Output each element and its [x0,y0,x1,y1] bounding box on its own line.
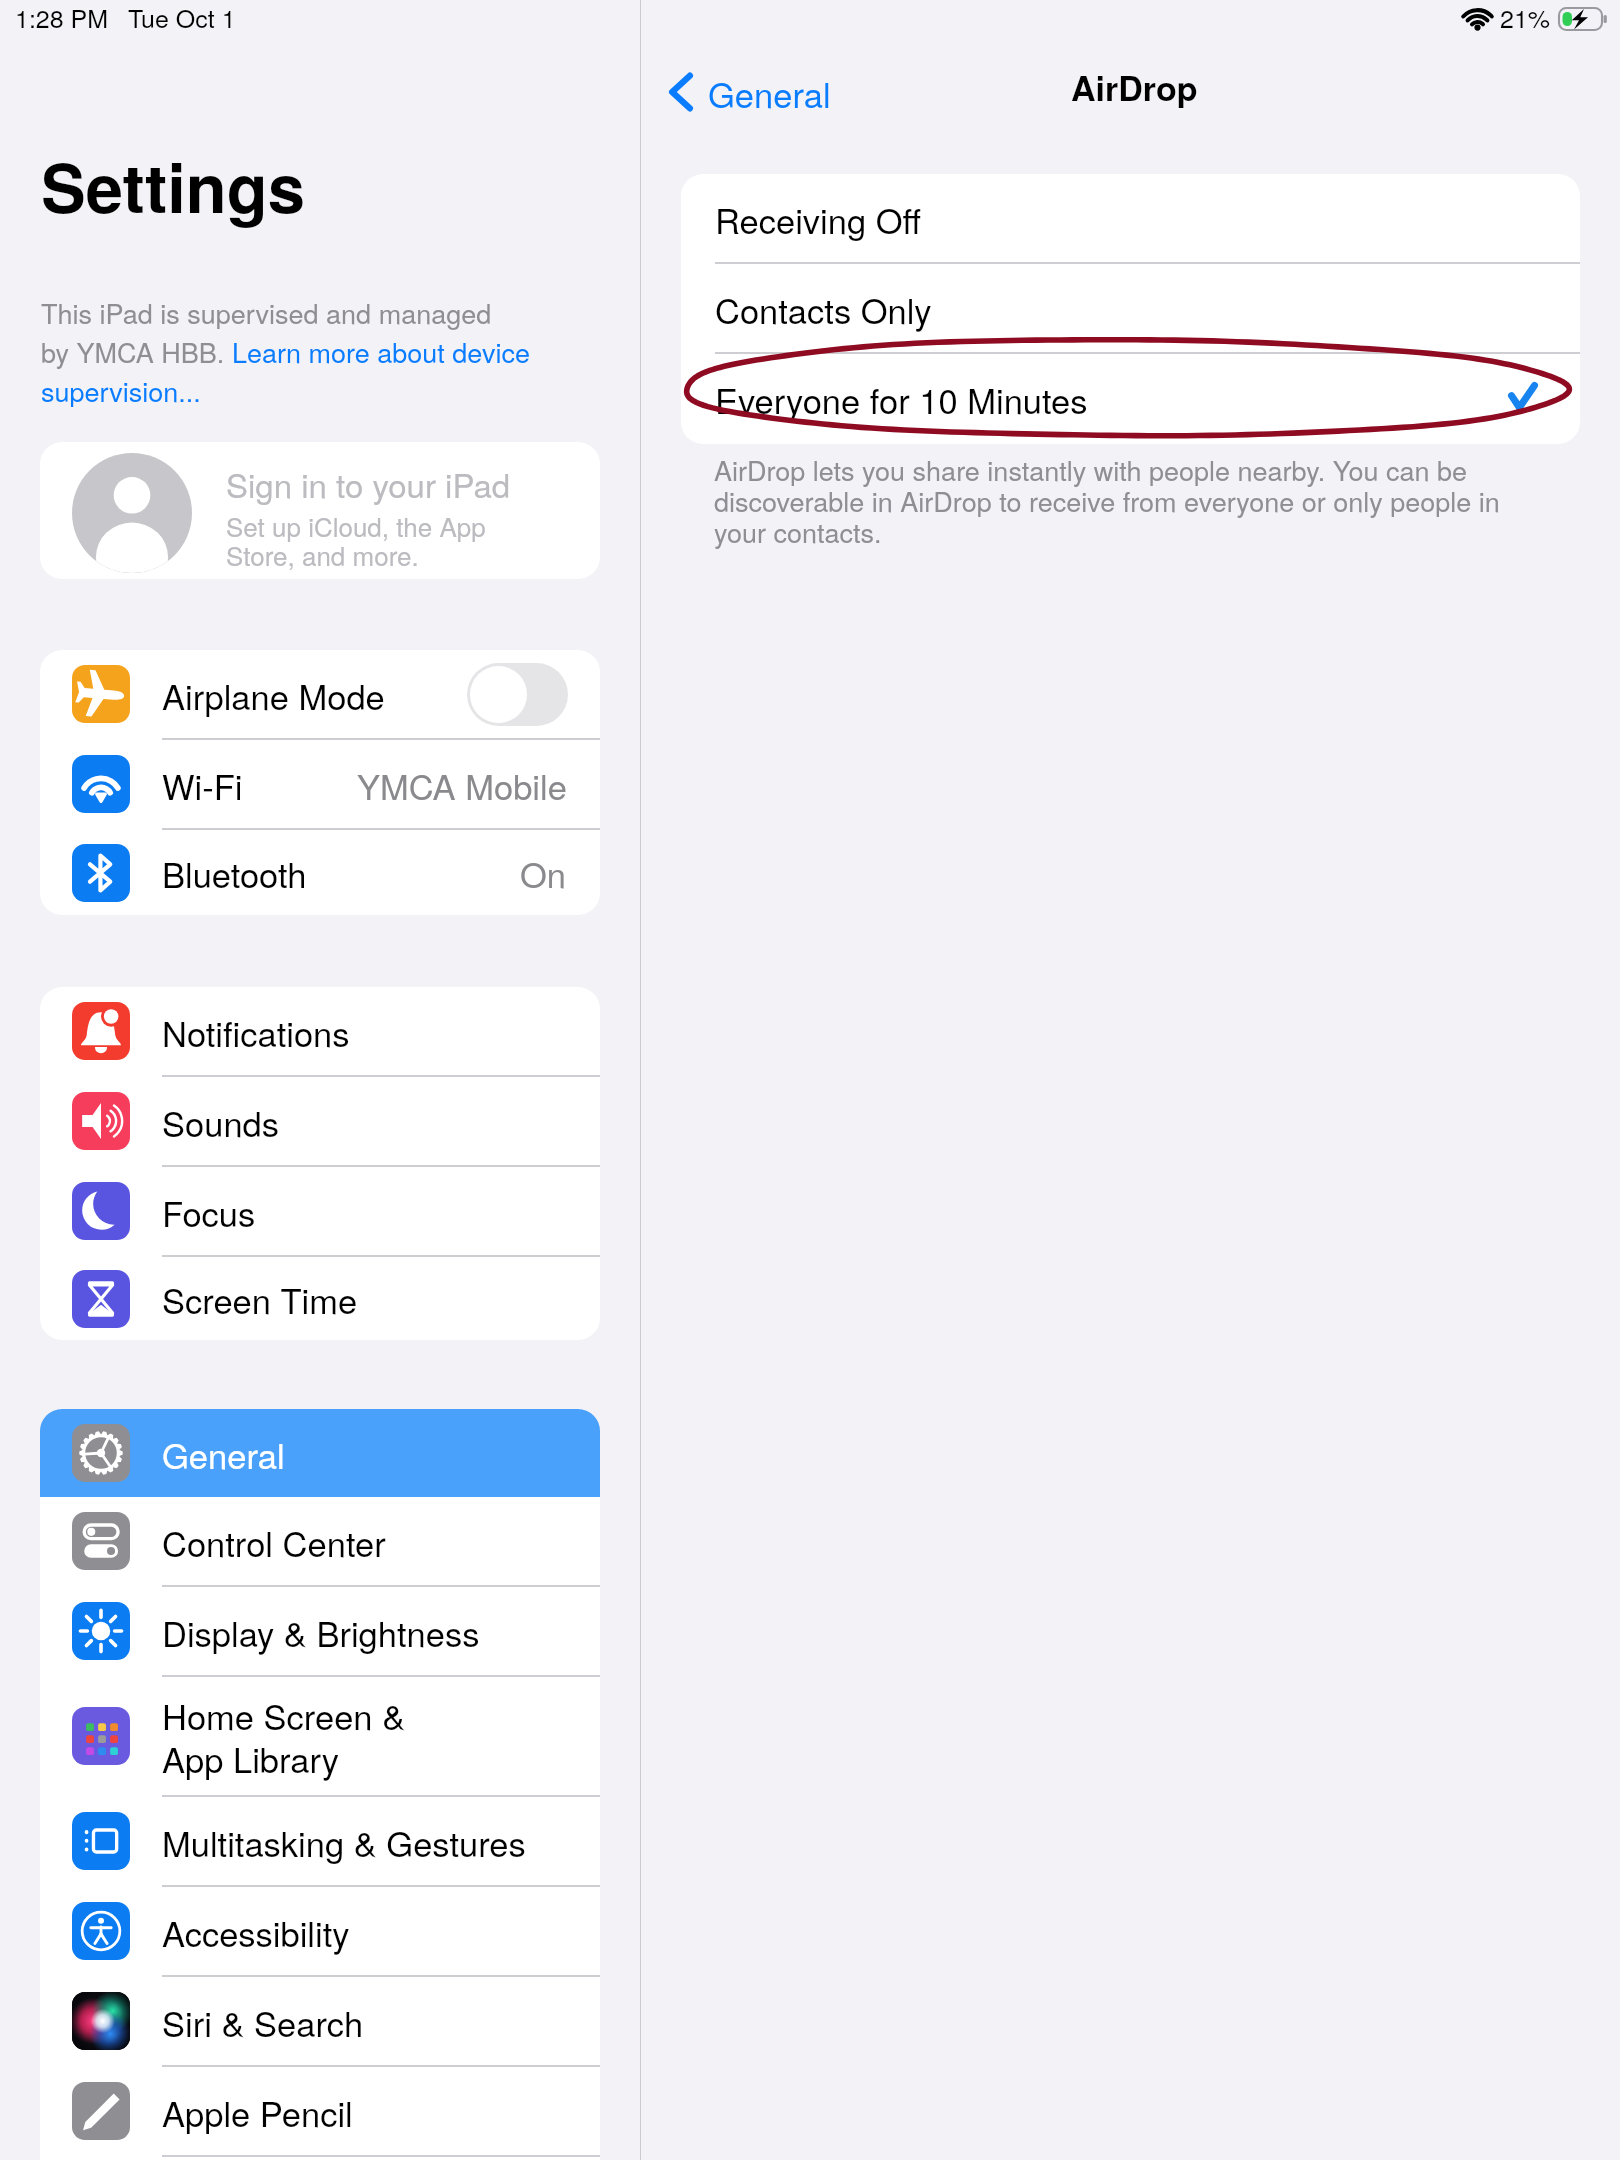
button[interactable]: Control Center [40,1497,600,1585]
button[interactable]: Airplane Mode toggle [467,663,568,726]
button[interactable]: Airplane Mode [40,650,600,738]
staticText: Tue Oct 1 [128,0,236,35]
staticText: Set up iCloud, the App Store, and more. [226,507,486,574]
staticText: Screen Time [162,1274,358,1323]
staticText: Sign in to your iPad [226,460,511,507]
button[interactable]: Focus [40,1167,600,1255]
button[interactable]: General [668,64,831,120]
staticText: by YMCA HBB. [41,332,232,371]
button[interactable]: Sign in to your iPad [40,442,600,579]
button[interactable]: Apple Pencil [40,2067,600,2155]
staticText: Wi-Fi [162,760,243,809]
staticText: 21% [1500,0,1551,35]
staticText: Apple Pencil [162,2087,353,2136]
button[interactable]: Receiving Off [681,174,1580,262]
staticText: AirDrop lets you share instantly with pe… [714,450,1514,551]
button[interactable]: Siri & Search [40,1977,600,2065]
button[interactable]: Contacts Only [681,264,1580,352]
button[interactable]: Home Screen & App Library [40,1677,600,1795]
button[interactable]: Display & Brightness [40,1587,600,1675]
button[interactable]: Sounds [40,1077,600,1165]
button[interactable]: Accessibility [40,1887,600,1975]
staticText: Bluetooth [162,848,307,897]
staticText: Siri & Search [162,1997,364,2046]
button[interactable]: General [40,1409,600,1497]
staticText: Home Screen & App Library [162,1690,406,1783]
button[interactable]: Wi-Fi [40,740,600,828]
button[interactable]: Screen Time [40,1257,600,1340]
staticText: Accessibility [162,1907,350,1956]
button[interactable]: supervision... [41,371,201,410]
staticText: Multitasking & Gestures [162,1817,526,1866]
button[interactable]: Multitasking & Gestures [40,1797,600,1885]
staticText: On [520,848,567,897]
staticText: Receiving Off [715,194,921,243]
button[interactable]: Learn more about device [232,332,530,371]
staticText: YMCA Mobile [357,760,567,809]
staticText: Notifications [162,1007,350,1056]
staticText: Settings [41,138,305,234]
staticText: AirDrop [1071,63,1198,112]
staticText: Contacts Only [715,284,932,333]
button[interactable]: Notifications [40,987,600,1075]
button[interactable]: Everyone for 10 Minutes [681,354,1580,442]
staticText: General [162,1429,285,1478]
staticText: General [708,68,831,117]
staticText: Display & Brightness [162,1607,480,1656]
staticText: Everyone for 10 Minutes [715,374,1088,423]
staticText: Airplane Mode [162,670,385,719]
staticText: Sounds [162,1097,279,1146]
staticText: Focus [162,1187,256,1236]
staticText: This iPad is supervised and managed [41,293,492,332]
staticText: Control Center [162,1517,386,1566]
staticText: 1:28 PM [15,0,109,35]
button[interactable]: Bluetooth [40,830,600,915]
